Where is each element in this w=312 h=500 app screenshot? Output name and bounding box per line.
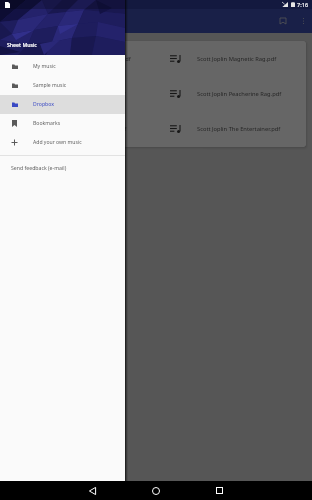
staticText: My music [33, 63, 56, 70]
button[interactable]: Scott Joplin Peacherine Rag.pdf [156, 76, 306, 111]
button[interactable]: Scott Joplin Maple Leaf Rag.pdf [6, 41, 156, 76]
staticText: Scott Joplin Gladiolus Rag.pdf [47, 125, 127, 133]
staticText: Scott Joplin Peacherine Rag.pdf [197, 90, 282, 98]
button[interactable]: Recents [209, 481, 229, 500]
button[interactable]: Send feedback (e-mail) [0, 156, 125, 178]
button[interactable]: Back [82, 481, 102, 500]
button[interactable]: Add your own music [0, 133, 125, 152]
button[interactable]: Scott Joplin Gladiolus Rag.pdf [6, 111, 156, 146]
staticText: Dropbox [33, 101, 54, 108]
staticText: Bookmarks [33, 120, 61, 127]
staticText: Scott Joplin Maple Leaf Rag.pdf [47, 55, 131, 63]
button[interactable]: Home [146, 481, 166, 500]
button[interactable]: Sample music [0, 76, 125, 95]
button[interactable]: Bookmarks [275, 13, 291, 29]
staticText: 7:16 [297, 1, 309, 9]
staticText: Sample music [33, 82, 67, 89]
button[interactable]: More options [296, 14, 310, 28]
staticText: Scott Joplin Magnetic Rag.pdf [197, 55, 277, 63]
staticText: Scott Joplin Original Rags.pdf [47, 90, 126, 98]
staticText: Scott Joplin The Entertainer.pdf [197, 125, 281, 133]
button[interactable]: Scott Joplin Magnetic Rag.pdf [156, 41, 306, 76]
button[interactable]: My music [0, 57, 125, 76]
staticText: Add your own music [33, 139, 82, 146]
button[interactable]: Dropbox [0, 95, 125, 114]
staticText: Sheet Music [7, 41, 37, 48]
button[interactable]: Scott Joplin Original Rags.pdf [6, 76, 156, 111]
staticText: Send feedback (e-mail) [11, 164, 67, 171]
button[interactable]: Scott Joplin The Entertainer.pdf [156, 111, 306, 146]
button[interactable]: Bookmarks [0, 114, 125, 133]
